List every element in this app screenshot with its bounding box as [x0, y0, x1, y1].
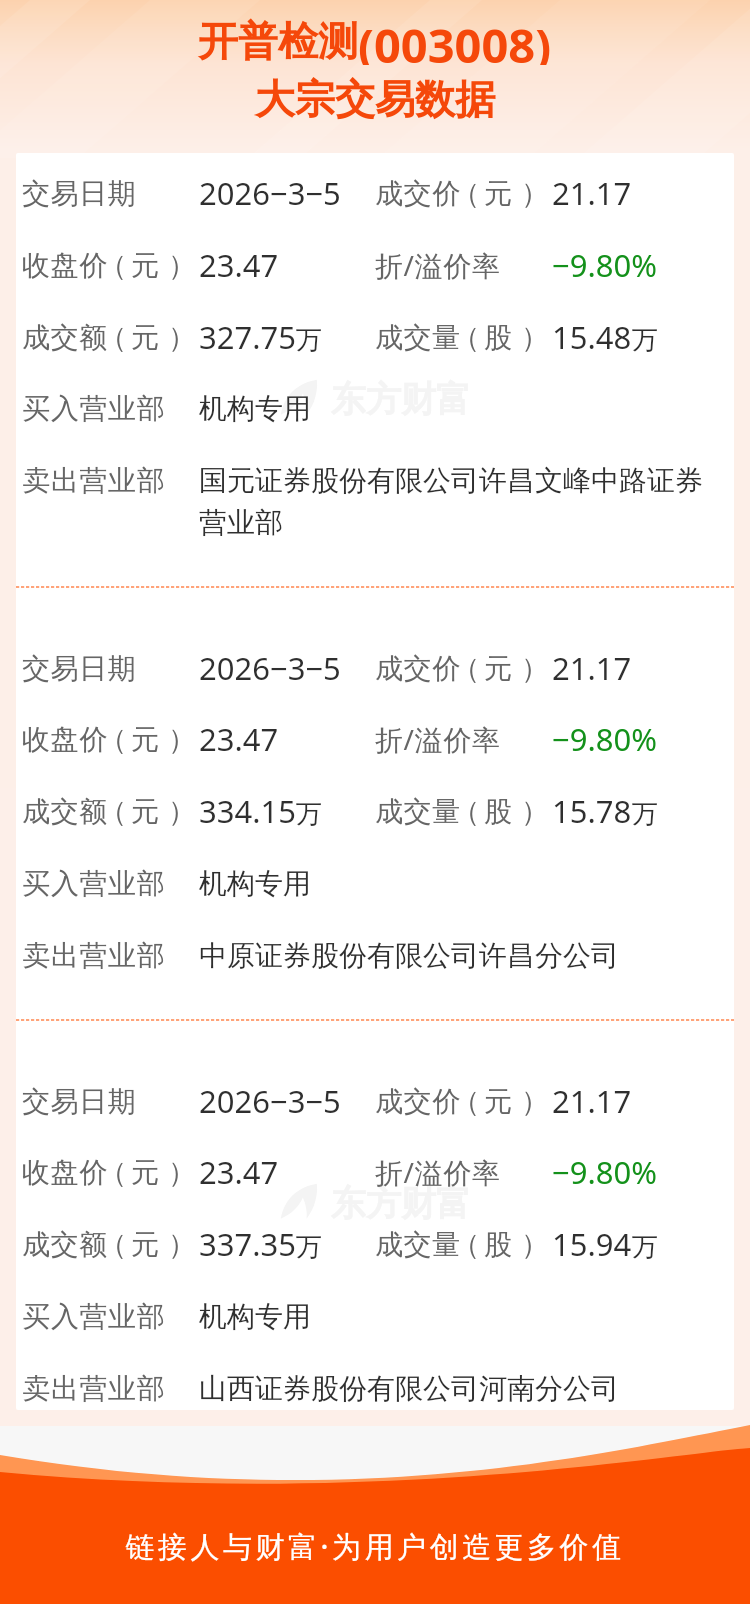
staticText: ） — [521, 176, 549, 211]
staticText: 成交价 — [375, 176, 461, 211]
staticText: (003008) — [358, 13, 552, 65]
staticText: （ — [99, 1155, 122, 1190]
staticText: ） — [168, 248, 196, 283]
staticText: （ — [99, 1227, 122, 1262]
staticText: （ — [99, 722, 122, 757]
staticText: （ — [452, 651, 475, 686]
staticText: 交易日期 — [22, 651, 137, 686]
staticText: （ — [452, 1084, 475, 1119]
staticText: 2026−3−5 — [199, 647, 341, 689]
staticText: 卖出营业部 — [22, 463, 165, 498]
staticText: 成交额 — [22, 794, 108, 829]
staticText: 机构专用 — [199, 1299, 311, 1334]
staticText: 21.17 — [552, 172, 632, 214]
staticText: 元 — [131, 1227, 159, 1262]
button[interactable] — [16, 153, 734, 1410]
staticText: 成交价 — [375, 1084, 461, 1119]
staticText: 买入营业部 — [22, 1299, 165, 1334]
staticText: 股 — [484, 320, 512, 355]
staticText: 成交量 — [375, 1227, 461, 1262]
staticText: ） — [168, 1155, 196, 1190]
staticText: −9.80% — [552, 244, 657, 286]
staticText: 334.15 — [199, 790, 296, 832]
staticText: 折/溢价率 — [375, 1153, 501, 1191]
staticText: 15.94 — [552, 1223, 632, 1265]
staticText: 成交量 — [375, 320, 461, 355]
staticText: 万 — [632, 798, 658, 831]
staticText: 东方财富 — [331, 1181, 471, 1225]
staticText: 23.47 — [199, 718, 279, 760]
staticText: 成交额 — [22, 320, 108, 355]
staticText: 股 — [484, 1227, 512, 1262]
staticText: 折/溢价率 — [375, 246, 501, 284]
staticText: ） — [521, 794, 549, 829]
staticText: 折/溢价率 — [375, 720, 501, 758]
staticText: 机构专用 — [199, 866, 311, 901]
staticText: 21.17 — [552, 1080, 632, 1122]
staticText: 买入营业部 — [22, 391, 165, 426]
staticText: ） — [521, 1084, 549, 1119]
staticText: ） — [168, 794, 196, 829]
staticText: 收盘价 — [22, 248, 108, 283]
staticText: ） — [168, 1227, 196, 1262]
staticText: 元 — [131, 1155, 159, 1190]
staticText: 大宗交易数据 — [0, 74, 750, 124]
staticText: ） — [168, 722, 196, 757]
staticText: 收盘价 — [22, 1155, 108, 1190]
staticText: （ — [452, 320, 475, 355]
staticText: 交易日期 — [22, 1084, 137, 1119]
staticText: 万 — [296, 798, 322, 831]
staticText: 万 — [632, 1231, 658, 1264]
staticText: （ — [452, 1227, 475, 1262]
staticText: 万 — [296, 1231, 322, 1264]
staticText: 成交量 — [375, 794, 461, 829]
staticText: 成交价 — [375, 651, 461, 686]
staticText: 327.75 — [199, 316, 296, 358]
staticText: 元 — [484, 651, 512, 686]
staticText: ） — [168, 320, 196, 355]
staticText: 元 — [131, 794, 159, 829]
staticText: 买入营业部 — [22, 866, 165, 901]
staticText: （ — [452, 176, 475, 211]
staticText: 23.47 — [199, 1151, 279, 1193]
staticText: 国元证券股份有限公司许昌文峰中路证券 — [199, 463, 703, 498]
staticText: 营业部 — [199, 505, 283, 540]
staticText: 链接人与财富·为用户创造更多价值 — [0, 1526, 750, 1566]
staticText: 元 — [484, 1084, 512, 1119]
staticText: 开普检测 — [198, 16, 358, 66]
staticText: 机构专用 — [199, 391, 311, 426]
staticText: 337.35 — [199, 1223, 296, 1265]
staticText: 元 — [131, 722, 159, 757]
staticText: 21.17 — [552, 647, 632, 689]
staticText: −9.80% — [552, 1151, 657, 1193]
staticText: （ — [99, 794, 122, 829]
staticText: 23.47 — [199, 244, 279, 286]
staticText: 15.48 — [552, 316, 632, 358]
staticText: 卖出营业部 — [22, 1371, 165, 1406]
staticText: 元 — [131, 320, 159, 355]
staticText: （ — [99, 320, 122, 355]
staticText: −9.80% — [552, 718, 657, 760]
staticText: （ — [452, 794, 475, 829]
staticText: 中原证券股份有限公司许昌分公司 — [199, 938, 619, 973]
staticText: 卖出营业部 — [22, 938, 165, 973]
staticText: 2026−3−5 — [199, 172, 341, 214]
staticText: 2026−3−5 — [199, 1080, 341, 1122]
staticText: 交易日期 — [22, 176, 137, 211]
staticText: 收盘价 — [22, 722, 108, 757]
staticText: 15.78 — [552, 790, 632, 832]
staticText: ） — [521, 320, 549, 355]
staticText: 山西证券股份有限公司河南分公司 — [199, 1371, 619, 1406]
staticText: ） — [521, 1227, 549, 1262]
staticText: 元 — [131, 248, 159, 283]
staticText: 元 — [484, 176, 512, 211]
staticText: 成交额 — [22, 1227, 108, 1262]
staticText: 万 — [632, 324, 658, 357]
staticText: 东方财富 — [331, 377, 471, 421]
staticText: （ — [99, 248, 122, 283]
staticText: 万 — [296, 324, 322, 357]
staticText: 股 — [484, 794, 512, 829]
staticText: ） — [521, 651, 549, 686]
